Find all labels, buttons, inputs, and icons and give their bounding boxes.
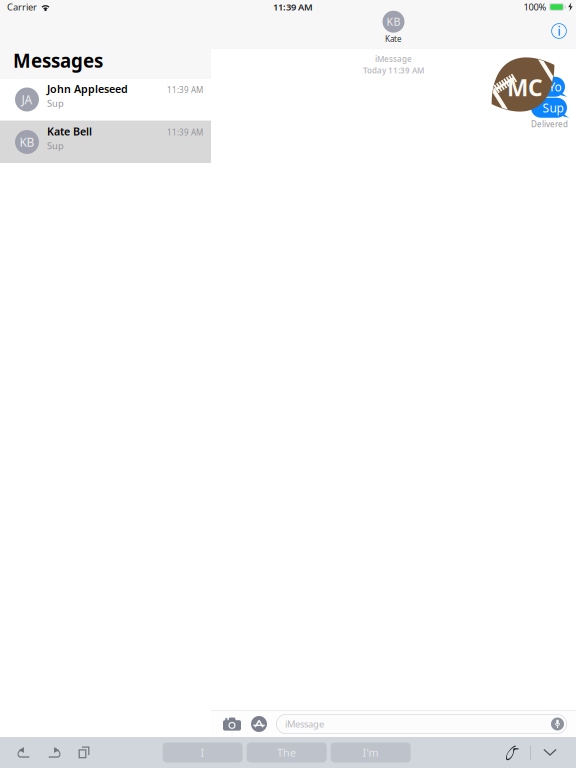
button[interactable]: I <box>163 742 243 762</box>
button[interactable]: KB <box>365 14 421 48</box>
staticText: Today 11:39 AM <box>363 65 424 76</box>
button[interactable]: Hide keyboard <box>537 737 563 768</box>
staticText: iMessage <box>285 718 324 730</box>
button[interactable]: iMessage <box>276 714 567 734</box>
staticText: KB <box>386 15 400 29</box>
button[interactable]: Paste <box>73 737 95 768</box>
staticText: 100% <box>524 1 547 13</box>
button[interactable]: JA <box>0 78 211 120</box>
staticText: Delivered <box>531 119 568 129</box>
button[interactable]: Redo <box>43 737 65 768</box>
button[interactable]: The <box>247 742 327 762</box>
button[interactable]: I'm <box>331 742 411 762</box>
staticText: John Appleseed <box>47 82 128 96</box>
staticText: Yo <box>548 79 561 95</box>
staticText: I'm <box>363 745 379 760</box>
staticText: Carrier <box>7 1 37 13</box>
staticText: 11:39 AM <box>273 1 313 13</box>
staticText: Sup <box>47 97 64 109</box>
button[interactable]: Scribble <box>498 737 524 768</box>
staticText: iMessage <box>375 53 412 64</box>
staticText: 11:39 AM <box>167 127 203 138</box>
staticText: Kate Bell <box>47 124 92 138</box>
staticText: MC <box>507 72 543 102</box>
staticText: Messages <box>13 48 103 73</box>
staticText: Kate <box>385 34 402 44</box>
staticText: Sup <box>47 139 64 152</box>
staticText: 11:39 AM <box>167 84 203 95</box>
button[interactable]: KB <box>0 121 211 163</box>
staticText: I <box>201 745 205 760</box>
staticText: JA <box>21 91 32 107</box>
staticText: i <box>557 23 560 39</box>
button[interactable]: Camera <box>221 711 243 737</box>
button[interactable]: Undo <box>13 737 35 768</box>
button[interactable]: Apps <box>249 711 269 737</box>
button[interactable]: Details <box>545 17 573 45</box>
staticText: The <box>277 745 296 760</box>
staticText: Sup <box>542 100 563 116</box>
staticText: KB <box>19 134 34 150</box>
